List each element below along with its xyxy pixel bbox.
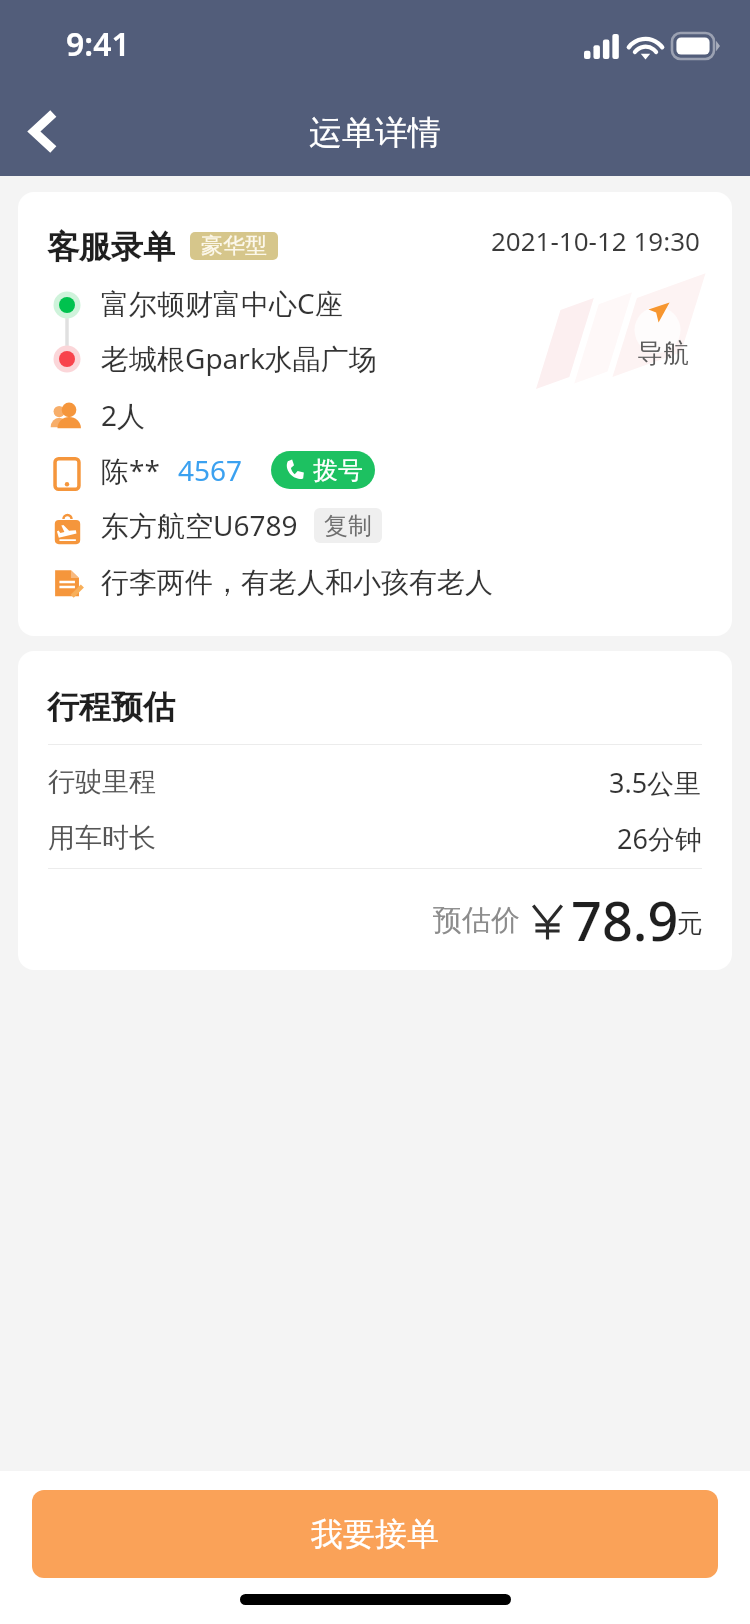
staticText: 2021-10-12 19:30 [491, 223, 700, 258]
staticText: 2人 [101, 396, 146, 434]
staticText: 运单详情 [309, 112, 441, 154]
button[interactable]: 复制 [314, 508, 382, 543]
staticText: 26分钟 [617, 820, 702, 857]
staticText: 预估价 [433, 902, 520, 939]
staticText: 行程预估 [47, 687, 175, 727]
staticText: 富尔顿财富中心C座 [101, 284, 343, 322]
staticText: 拨号 [313, 455, 363, 486]
staticText: 行驶里程 [48, 765, 156, 799]
staticText: 陈** [101, 451, 160, 489]
button[interactable]: 拨号 [271, 451, 375, 489]
button[interactable]: 我要接单 [32, 1490, 718, 1578]
staticText: 78.9 [571, 883, 679, 957]
staticText: 9:41 [66, 22, 130, 66]
staticText: 用车时长 [48, 821, 156, 855]
staticText: 我要接单 [311, 1514, 439, 1554]
staticText: 元 [677, 907, 703, 940]
staticText: 客服录单 [47, 227, 175, 267]
staticText: 4567 [178, 451, 243, 489]
button[interactable]: 导航 [536, 297, 732, 389]
staticText: 豪华型 [201, 232, 267, 260]
staticText: 3.5公里 [609, 764, 702, 801]
staticText: 老城根Gpark水晶广场 [101, 339, 377, 377]
staticText: 复制 [324, 511, 372, 541]
staticText: 行李两件，有老人和小孩有老人 [101, 565, 493, 600]
staticText: 导航 [637, 337, 689, 370]
button[interactable]: Back [10, 98, 76, 164]
staticText: 东方航空U6789 [101, 506, 298, 544]
